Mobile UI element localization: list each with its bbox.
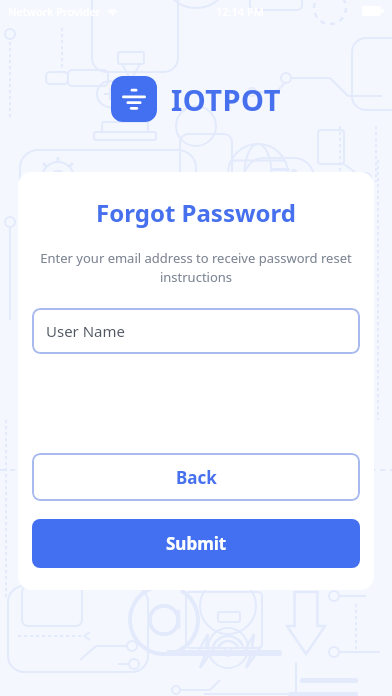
staticText: Network Provider bbox=[8, 4, 101, 19]
button[interactable]: Back bbox=[32, 453, 360, 501]
button[interactable]: User Name bbox=[32, 308, 360, 354]
button[interactable]: Submit bbox=[32, 519, 360, 568]
staticText: Enter your email address to receive pass… bbox=[32, 249, 360, 286]
staticText: Back bbox=[176, 466, 217, 489]
staticText: 12:14 PM bbox=[216, 4, 264, 19]
staticText: User Name bbox=[46, 321, 126, 341]
staticText: IOTPOT bbox=[171, 80, 281, 119]
staticText: Forgot Password bbox=[96, 196, 296, 229]
staticText: Submit bbox=[166, 532, 227, 555]
